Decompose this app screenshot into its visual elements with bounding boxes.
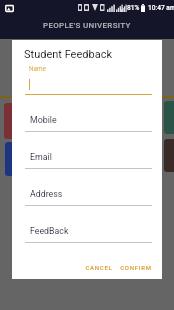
staticText: CONFIRM [120,264,152,271]
staticText: Mobile [30,115,57,125]
staticText: CANCEL [85,264,113,271]
staticText: 10:47 am [148,4,174,12]
button[interactable]: CANCEL [82,261,116,274]
button[interactable]: CONFIRM [117,261,155,274]
staticText: FeedBack [30,226,69,236]
staticText: 81% [127,4,140,12]
staticText: PEOPLE'S UNIVERSITY [43,21,131,30]
staticText: Address [30,189,63,199]
staticText: Student Feedback [24,48,112,61]
staticText: Email [30,152,52,162]
staticText: Name [29,65,46,72]
